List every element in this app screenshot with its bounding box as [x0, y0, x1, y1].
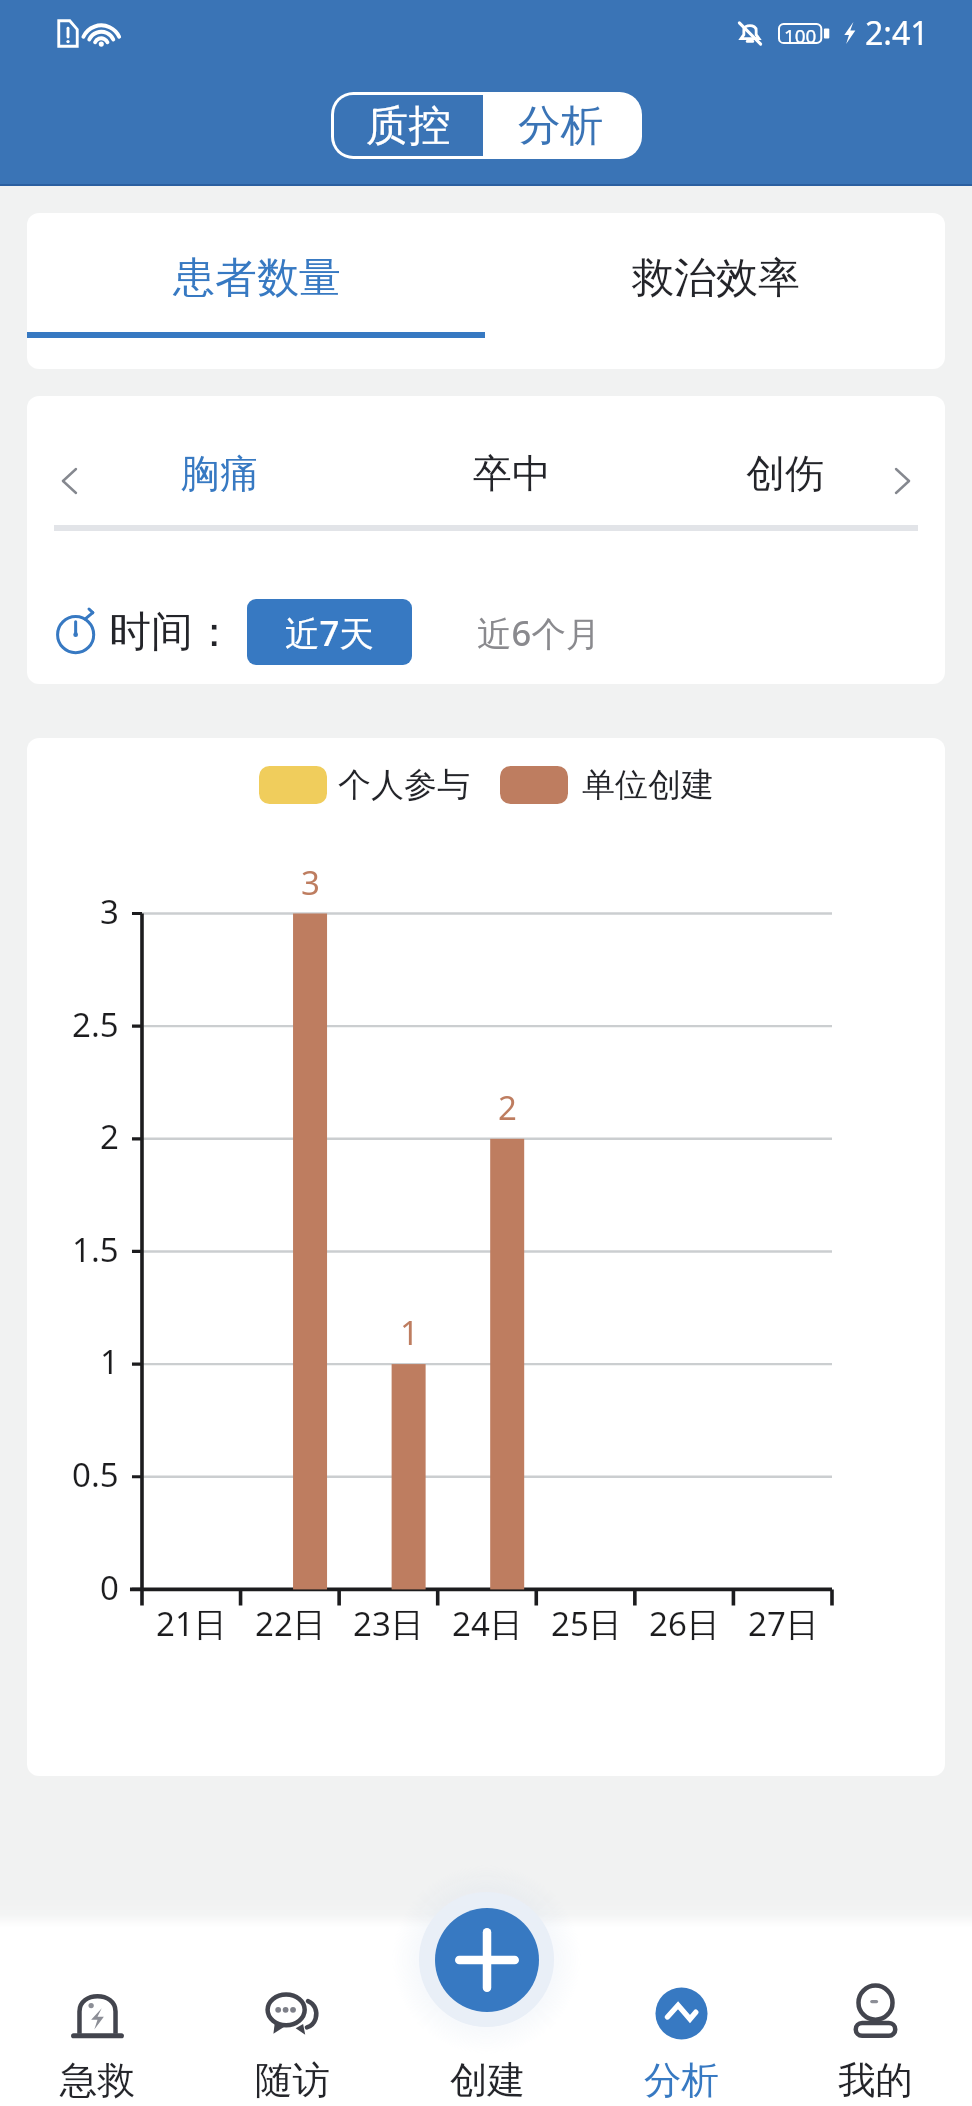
staticText: 100	[784, 23, 817, 44]
button[interactable]: 胸痛	[142, 396, 298, 551]
staticText: 22日	[255, 1601, 326, 1646]
staticText: 26日	[649, 1601, 720, 1646]
staticText: 25日	[551, 1601, 622, 1646]
button[interactable]: 患者数量	[27, 213, 486, 344]
staticText: 2	[100, 1114, 119, 1159]
staticText: 近7天	[285, 609, 374, 656]
button[interactable]: 创建	[390, 1928, 584, 2106]
staticText: 个人参与	[338, 764, 470, 806]
staticText: 创伤	[746, 449, 824, 498]
button[interactable]: 创伤	[707, 396, 863, 551]
staticText: 3	[100, 889, 119, 934]
button[interactable]: 救治效率	[486, 213, 945, 344]
staticText: 卒中	[473, 449, 551, 498]
button[interactable]: 卒中	[434, 396, 590, 551]
staticText: 27日	[748, 1601, 819, 1646]
staticText: 质控	[366, 99, 452, 153]
staticText: 1	[100, 1339, 119, 1384]
staticText: 24日	[452, 1601, 523, 1646]
staticText: 时间：	[109, 606, 235, 659]
staticText: 3	[301, 860, 320, 905]
button[interactable]: 分析	[584, 1928, 778, 2106]
staticText: 1	[400, 1310, 419, 1355]
staticText: 2	[498, 1085, 517, 1130]
button[interactable]: Previous category	[36, 448, 102, 514]
staticText: 救治效率	[632, 252, 800, 305]
staticText: 2:41	[865, 11, 929, 55]
button[interactable]: Create	[392, 1865, 581, 2054]
button[interactable]: 分析	[483, 95, 639, 156]
staticText: 胸痛	[181, 449, 259, 498]
button[interactable]: 我的	[778, 1928, 972, 2106]
staticText: 我的	[838, 2057, 913, 2104]
staticText: 0.5	[72, 1452, 119, 1497]
staticText: 随访	[255, 2057, 330, 2104]
staticText: 21日	[156, 1601, 227, 1646]
staticText: 创建	[450, 2057, 525, 2104]
staticText: 近6个月	[477, 609, 601, 656]
button[interactable]: 质控	[334, 95, 483, 156]
button[interactable]: 近7天	[247, 599, 412, 665]
staticText: 单位创建	[582, 764, 714, 806]
staticText: 急救	[60, 2057, 135, 2104]
staticText: 分析	[518, 99, 604, 153]
button[interactable]: Next category	[869, 448, 935, 514]
staticText: 2.5	[72, 1002, 119, 1047]
button[interactable]: 近6个月	[444, 581, 634, 683]
staticText: 0	[100, 1565, 119, 1610]
staticText: 患者数量	[173, 252, 341, 305]
staticText: 23日	[353, 1601, 424, 1646]
staticText: 分析	[644, 2057, 719, 2104]
button[interactable]: 随访	[195, 1928, 390, 2106]
button[interactable]: 急救	[0, 1928, 195, 2106]
staticText: 1.5	[72, 1227, 119, 1272]
